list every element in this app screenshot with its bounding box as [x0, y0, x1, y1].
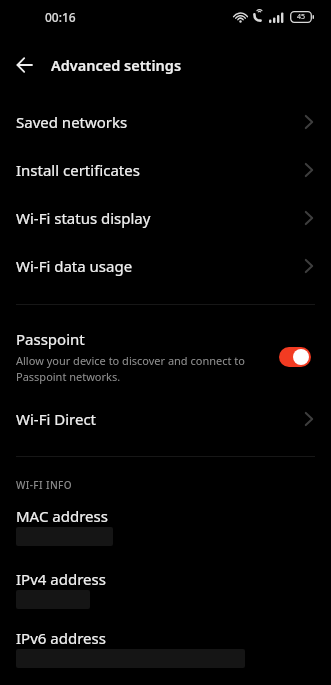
staticText: Wi-Fi data usage — [16, 256, 304, 276]
staticText: Install certificates — [16, 160, 304, 180]
button[interactable]: Passpoint — [0, 305, 331, 395]
button[interactable]: Saved networks — [0, 98, 331, 146]
button[interactable] — [16, 57, 33, 73]
button[interactable]: Wi-Fi Direct — [0, 395, 331, 443]
staticText: 45 — [297, 12, 306, 22]
button[interactable]: Install certificates — [0, 146, 331, 194]
button[interactable] — [279, 347, 311, 367]
staticText: Passpoint — [16, 329, 85, 349]
staticText: 00:16 — [45, 9, 76, 25]
staticText: Allow your device to discover and connec… — [16, 353, 245, 385]
staticText: IPv6 address — [16, 628, 106, 648]
staticText: Saved networks — [16, 112, 304, 132]
staticText: WI-FI INFO — [16, 478, 72, 492]
button[interactable]: Wi-Fi data usage — [0, 242, 331, 290]
staticText: Wi-Fi Direct — [16, 409, 304, 429]
button[interactable]: Wi-Fi status display — [0, 194, 331, 242]
staticText: IPv4 address — [16, 569, 106, 589]
staticText: Advanced settings — [51, 55, 182, 75]
staticText: Wi-Fi status display — [16, 208, 304, 228]
staticText: MAC address — [16, 506, 108, 526]
